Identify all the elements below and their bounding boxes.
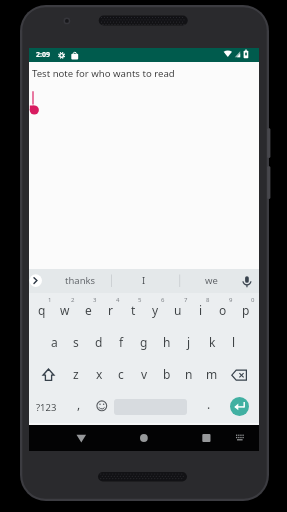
button[interactable]: c [110,359,132,389]
button[interactable]: e [77,295,99,325]
staticText: j [187,334,191,350]
staticText: s [73,334,79,350]
staticText: b [163,366,171,382]
button[interactable]: g [133,327,155,357]
staticText: 9 [229,296,233,304]
button[interactable] [94,393,112,421]
button[interactable]: q [31,295,53,325]
staticText: n [185,366,193,382]
button[interactable]: thanks [48,269,112,291]
staticText: 2 [71,296,75,304]
button[interactable] [29,269,57,294]
button[interactable] [33,360,57,388]
button[interactable]: we [183,269,239,291]
button[interactable]: y [144,295,166,325]
button[interactable] [230,397,249,416]
staticText: h [163,334,171,350]
button[interactable]: i [190,295,212,325]
staticText: ?123 [36,401,57,414]
staticText: u [174,302,182,318]
staticText: 2:09 [36,50,50,60]
staticText: k [209,334,216,350]
button[interactable]: k [201,327,223,357]
button[interactable]: f [110,327,132,357]
button[interactable]: x [88,359,110,389]
staticText: 3 [93,296,97,304]
button[interactable]: h [156,327,178,357]
staticText: 0 [251,296,255,304]
staticText: i [199,302,203,318]
button[interactable]: d [88,327,110,357]
staticText: . [207,396,211,412]
button[interactable]: n [178,359,200,389]
staticText: v [141,366,148,382]
button[interactable]: p [235,295,257,325]
button[interactable]: m [201,359,223,389]
button[interactable]: t [122,295,144,325]
button[interactable] [231,428,249,448]
button[interactable]: z [65,359,87,389]
staticText: 7 [184,296,188,304]
button[interactable]: . [201,390,217,418]
staticText: p [242,302,250,318]
button[interactable]: , [71,390,87,418]
staticText: f [119,334,124,350]
staticText: d [95,334,103,350]
staticText: y [152,302,159,318]
button[interactable]: s [65,327,87,357]
button[interactable]: v [133,359,155,389]
staticText: x [96,366,103,382]
staticText: l [232,334,236,350]
button[interactable]: b [156,359,178,389]
staticText: r [108,302,113,318]
staticText: z [73,366,79,382]
staticText: 6 [161,296,165,304]
button[interactable] [70,428,93,448]
button[interactable]: I [116,269,172,291]
button[interactable] [29,62,259,269]
staticText: m [206,366,218,382]
button[interactable] [195,428,218,448]
button[interactable]: a [43,327,65,357]
staticText: 5 [138,296,142,304]
button[interactable]: ?123 [29,393,63,421]
staticText: Test note for who wants to read [32,67,175,80]
staticText: a [51,334,58,350]
staticText: , [77,396,81,412]
button[interactable]: j [178,327,200,357]
button[interactable]: u [167,295,189,325]
staticText: e [85,302,92,318]
button[interactable] [230,360,254,388]
staticText: thanks [65,274,96,287]
button[interactable]: l [223,327,245,357]
button[interactable]: w [54,295,76,325]
staticText: I [142,274,146,287]
staticText: q [38,302,46,318]
staticText: 8 [206,296,210,304]
staticText: g [140,334,148,350]
button[interactable] [132,428,155,448]
staticText: 1 [48,296,52,304]
staticText: 4 [116,296,120,304]
button[interactable]: o [212,295,234,325]
staticText: c [118,366,124,382]
staticText: w [60,302,70,318]
button[interactable]: r [99,295,121,325]
staticText: o [219,302,227,318]
staticText: we [205,274,218,287]
staticText: t [131,302,136,318]
